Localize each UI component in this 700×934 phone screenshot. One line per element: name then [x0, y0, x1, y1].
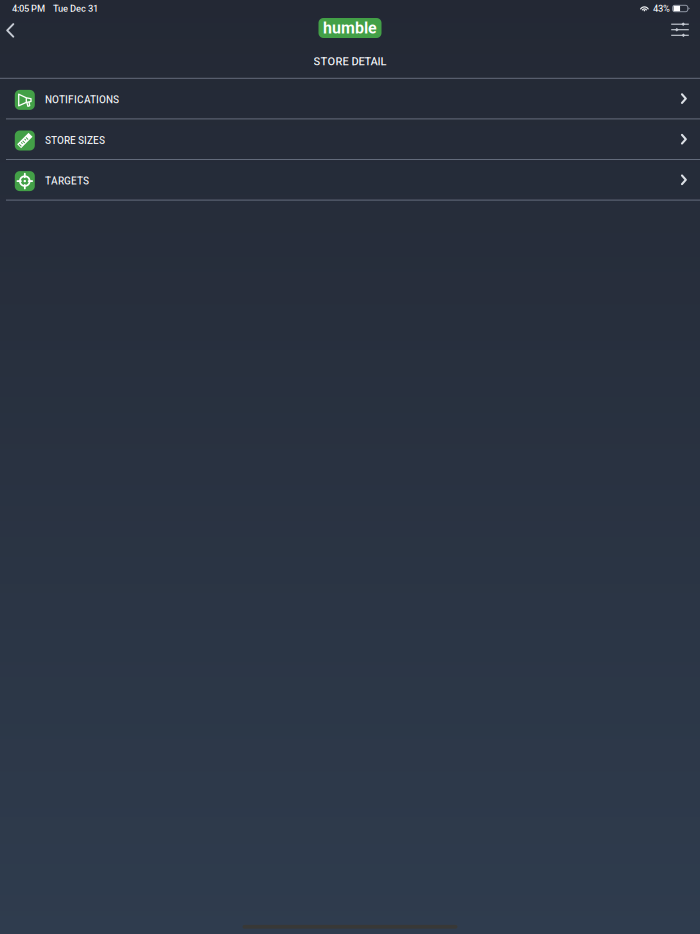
staticText: STORE DETAIL — [313, 55, 386, 68]
staticText: Tue Dec 31 — [53, 3, 98, 14]
staticText: humble — [323, 19, 377, 37]
button[interactable]: STORE SIZES — [0, 119, 700, 159]
staticText: NOTIFICATIONS — [45, 94, 119, 106]
staticText: TARGETS — [45, 175, 89, 187]
button[interactable]: Back — [0, 17, 23, 42]
staticText: 4:05 PM — [12, 3, 45, 14]
button[interactable]: Filter — [662, 18, 700, 41]
staticText: STORE SIZES — [45, 135, 105, 146]
button[interactable]: TARGETS — [0, 160, 700, 200]
staticText: 43% — [653, 3, 670, 14]
button[interactable]: NOTIFICATIONS — [0, 79, 700, 118]
